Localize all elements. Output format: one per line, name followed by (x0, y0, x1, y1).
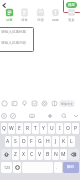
button[interactable]: Q (1, 123, 7, 134)
staticText: Q (2, 125, 6, 132)
button[interactable]: D (20, 136, 27, 147)
button[interactable]: W (8, 123, 15, 134)
button[interactable]: M (60, 149, 67, 160)
button[interactable]: U (48, 123, 55, 134)
button[interactable]: F (28, 136, 35, 147)
button[interactable]: K (60, 136, 67, 147)
staticText: M (61, 151, 66, 158)
button[interactable]: E (16, 123, 23, 134)
button[interactable]: Task (31, 100, 38, 107)
staticText: C (30, 151, 34, 158)
staticText: V (38, 151, 42, 158)
button[interactable]: T (32, 123, 39, 134)
button[interactable]: 。 (54, 162, 62, 173)
button[interactable]: Keyboard layout (29, 113, 35, 119)
button[interactable]: V (36, 149, 43, 160)
staticText: E (18, 125, 21, 132)
button[interactable]: R (24, 123, 31, 134)
staticText: B (46, 151, 50, 158)
staticText: 请输入记事标题 (1, 30, 27, 35)
staticText: K (62, 138, 66, 145)
button[interactable]: Translate (51, 100, 58, 107)
button[interactable]: J (52, 136, 59, 147)
button[interactable]: Handwriting (10, 113, 16, 119)
button[interactable]: Y (40, 123, 47, 134)
button[interactable]: Shift (1, 149, 11, 160)
button[interactable]: 更多 (65, 8, 78, 22)
button[interactable]: G (36, 136, 43, 147)
staticText: P (74, 125, 78, 132)
button[interactable]: A (5, 136, 11, 147)
button[interactable]: 简体中文 (59, 100, 75, 107)
button[interactable]: Hide keyboard (73, 113, 79, 119)
staticText: 提醒 (52, 18, 59, 22)
staticText: J (55, 138, 57, 145)
staticText: 记事 (6, 18, 13, 22)
staticText: L (70, 138, 73, 145)
button[interactable]: 清单 (18, 8, 31, 22)
staticText: 换行 (67, 165, 75, 170)
button[interactable]: N (52, 149, 59, 160)
staticText: Y (42, 125, 45, 132)
staticText: W (9, 125, 14, 132)
button[interactable]: P (72, 123, 79, 134)
staticText: 123 (4, 165, 10, 170)
button[interactable]: Voice input (1, 113, 7, 119)
staticText: Z (14, 151, 17, 158)
staticText: 日程 (37, 18, 44, 22)
button[interactable]: 123 (1, 162, 12, 173)
staticText: 。 (56, 166, 60, 170)
button[interactable]: Emoji (13, 162, 21, 173)
staticText: 清单 (21, 18, 28, 22)
staticText: 请输入记事内容 (1, 41, 27, 46)
button[interactable]: 提醒 (49, 8, 62, 22)
button[interactable]: Mention (41, 100, 48, 107)
button[interactable]: 记事 (3, 8, 16, 22)
staticText: A (6, 138, 10, 145)
staticText: U (50, 125, 54, 132)
button[interactable]: L (68, 136, 75, 147)
button[interactable]: 日程 (34, 8, 47, 22)
button[interactable]: H (44, 136, 51, 147)
staticText: I (59, 125, 61, 132)
button[interactable]: Emoji (1, 100, 8, 107)
button[interactable]: O (64, 123, 71, 134)
staticText: H (46, 138, 50, 145)
staticText: F (30, 138, 33, 145)
button[interactable]: B (44, 149, 51, 160)
staticText: 保存 (68, 3, 75, 7)
button[interactable]: Backspace (68, 149, 79, 160)
staticText: N (54, 151, 58, 158)
button[interactable]: S (12, 136, 19, 147)
staticText: 简体中文 (61, 102, 73, 106)
staticText: G (38, 138, 42, 145)
button[interactable]: Photo (11, 100, 18, 107)
staticText: 更多 (68, 18, 75, 22)
button[interactable]: 保存 (66, 2, 77, 8)
staticText: D (22, 138, 26, 145)
staticText: X (22, 151, 25, 158)
button[interactable]: I (56, 123, 63, 134)
button[interactable]: Back (0, 1, 9, 10)
button[interactable]: Z (12, 149, 19, 160)
staticText: O (66, 125, 70, 132)
staticText: T (34, 125, 37, 132)
button[interactable]: X (20, 149, 27, 160)
button[interactable]: Search (61, 113, 67, 119)
button[interactable]: Location (21, 100, 28, 107)
staticText: S (14, 138, 17, 145)
button[interactable]: Add (47, 113, 53, 119)
button[interactable]: C (28, 149, 35, 160)
button[interactable]: 换行 (63, 162, 79, 173)
staticText: R (26, 125, 30, 132)
